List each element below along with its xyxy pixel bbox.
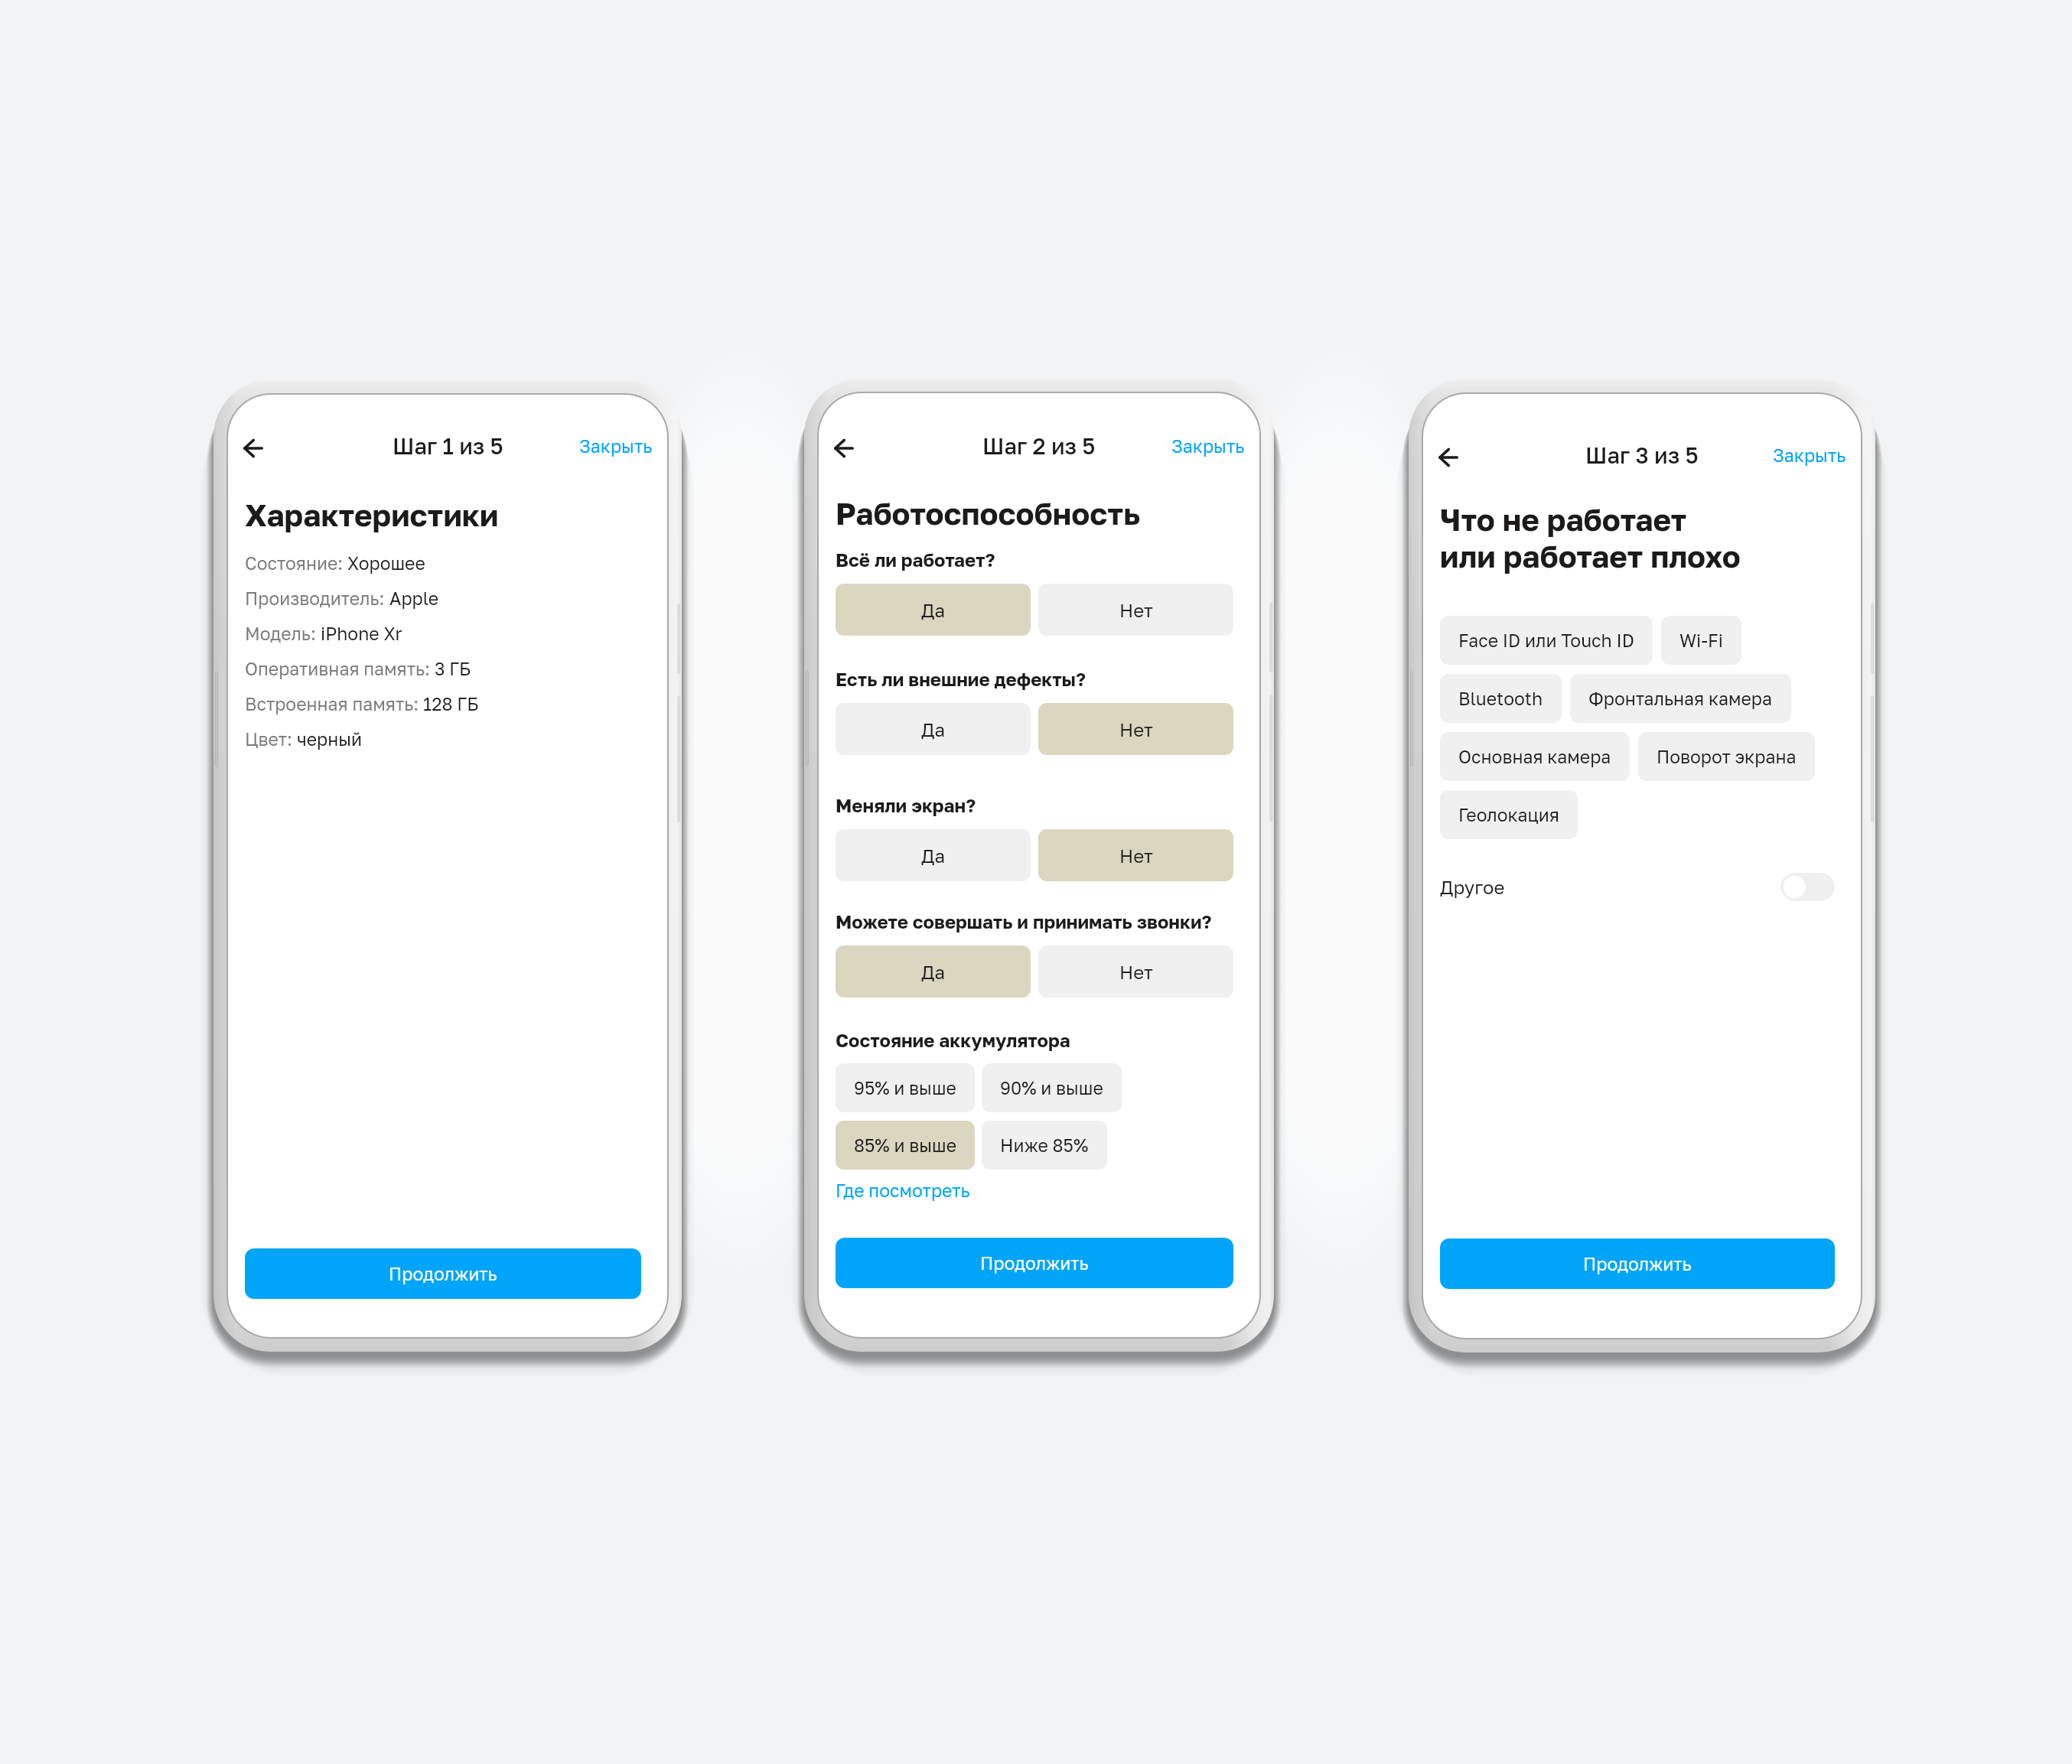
staticText: Есть ли внешние дефекты?: [836, 668, 1086, 690]
staticText: Да: [921, 599, 946, 621]
staticText: Основная камера: [1458, 746, 1611, 767]
button[interactable]: 95% и выше: [836, 1063, 975, 1112]
button[interactable]: Bluetooth: [1440, 674, 1562, 723]
staticText: Закрыть: [1773, 444, 1846, 466]
staticText: Нет: [1119, 961, 1153, 983]
staticText: Хорошее: [347, 552, 425, 574]
button[interactable]: Назад: [1429, 439, 1468, 476]
button[interactable]: Продолжить: [1440, 1238, 1835, 1289]
staticText: Закрыть: [1171, 435, 1245, 457]
staticText: iPhone Xr: [321, 623, 402, 644]
staticText: Apple: [389, 587, 439, 609]
staticText: Состояние аккумулятора: [836, 1029, 1070, 1051]
staticText: черный: [297, 728, 363, 750]
button[interactable]: Да: [836, 829, 1031, 881]
staticText: Продолжить: [389, 1263, 497, 1284]
staticText: Работоспособность: [836, 495, 1140, 532]
staticText: Цвет:: [245, 728, 297, 750]
staticText: Face ID или Touch ID: [1458, 630, 1634, 651]
button[interactable]: Продолжить: [836, 1238, 1233, 1288]
button[interactable]: Нет: [1038, 829, 1233, 881]
staticText: Продолжить: [980, 1252, 1089, 1274]
button[interactable]: 85% и выше: [836, 1121, 975, 1170]
staticText: Wi-Fi: [1679, 630, 1723, 651]
staticText: Характеристики: [245, 496, 499, 533]
button[interactable]: Нет: [1038, 945, 1233, 998]
staticText: Шаг 2 из 5: [982, 433, 1096, 460]
staticText: Другое: [1440, 876, 1505, 898]
button[interactable]: Другое: [1780, 873, 1835, 901]
button[interactable]: Нет: [1038, 584, 1233, 636]
button[interactable]: Да: [836, 945, 1031, 998]
staticText: Модель:: [245, 623, 321, 644]
staticText: Состояние:: [245, 552, 347, 574]
staticText: Фронтальная камера: [1588, 688, 1773, 709]
button[interactable]: 90% и выше: [982, 1063, 1122, 1112]
button[interactable]: Фронтальная камера: [1570, 674, 1791, 723]
button[interactable]: Закрыть: [579, 428, 653, 464]
button[interactable]: Где посмотреть: [836, 1180, 970, 1201]
staticText: Встроенная память:: [245, 693, 423, 714]
staticText: Производитель:: [245, 587, 389, 609]
staticText: Где посмотреть: [836, 1180, 970, 1201]
staticText: Да: [921, 718, 946, 740]
button[interactable]: Wi-Fi: [1661, 616, 1741, 665]
staticText: Нет: [1119, 845, 1153, 867]
staticText: Да: [921, 845, 946, 867]
staticText: 90% и выше: [1000, 1077, 1103, 1098]
staticText: Что не работает или работает плохо: [1440, 501, 1741, 574]
staticText: Да: [921, 961, 946, 983]
button[interactable]: Продолжить: [245, 1248, 641, 1299]
button[interactable]: Да: [836, 703, 1031, 755]
button[interactable]: Да: [836, 584, 1031, 636]
staticText: Шаг 3 из 5: [1585, 442, 1699, 469]
button[interactable]: Геолокация: [1440, 790, 1578, 839]
staticText: Оперативная память:: [245, 658, 435, 679]
staticText: Всё ли работает?: [836, 548, 995, 571]
staticText: Меняли экран?: [836, 794, 976, 816]
staticText: Шаг 1 из 5: [393, 433, 503, 460]
button[interactable]: Face ID или Touch ID: [1440, 616, 1653, 665]
button[interactable]: Поворот экрана: [1638, 732, 1815, 781]
staticText: Нет: [1119, 599, 1153, 621]
staticText: Закрыть: [579, 435, 653, 457]
staticText: Геолокация: [1458, 804, 1559, 825]
staticText: Продолжить: [1583, 1253, 1692, 1274]
button[interactable]: Основная камера: [1440, 732, 1630, 781]
button[interactable]: Ниже 85%: [982, 1121, 1107, 1170]
button[interactable]: Назад: [824, 430, 864, 467]
staticText: 85% и выше: [854, 1134, 956, 1156]
button[interactable]: Закрыть: [1773, 437, 1846, 474]
button[interactable]: Нет: [1038, 703, 1233, 755]
staticText: Нет: [1119, 718, 1153, 740]
button[interactable]: Закрыть: [1171, 428, 1245, 464]
staticText: Bluetooth: [1458, 688, 1543, 709]
staticText: Ниже 85%: [1000, 1134, 1089, 1156]
staticText: 3 ГБ: [435, 658, 471, 679]
staticText: 95% и выше: [854, 1077, 956, 1098]
staticText: 128 ГБ: [423, 693, 479, 714]
button[interactable]: Назад: [233, 430, 273, 467]
staticText: Поворот экрана: [1657, 746, 1797, 767]
staticText: Можете совершать и принимать звонки?: [836, 910, 1212, 932]
